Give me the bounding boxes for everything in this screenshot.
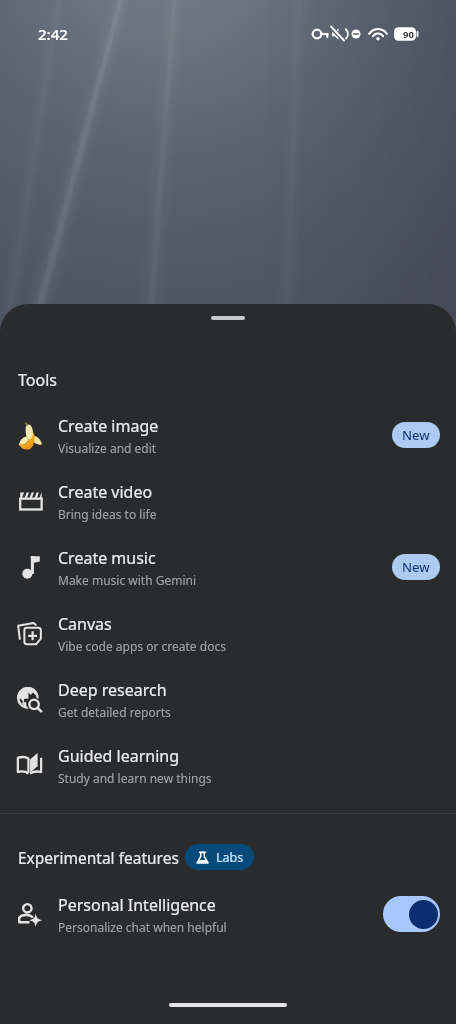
staticText: Make music with Gemini [58, 572, 197, 588]
button[interactable]: Toggle Personal Intelligence [383, 896, 440, 932]
staticText: New [402, 558, 430, 576]
button[interactable]: Labs [185, 844, 254, 870]
staticText: Bring ideas to life [58, 506, 157, 522]
staticText: Guided learning [58, 745, 180, 767]
staticText: Study and learn new things [58, 770, 212, 786]
button[interactable]: Create video [0, 468, 456, 534]
staticText: Create music [58, 547, 156, 569]
staticText: 2:42 [38, 24, 68, 44]
button[interactable]: New [392, 422, 440, 448]
button[interactable]: New [392, 554, 440, 580]
staticText: Canvas [58, 613, 112, 635]
staticText: Create video [58, 481, 153, 503]
button[interactable]: Create music [0, 534, 456, 600]
button[interactable]: Create image [0, 402, 456, 468]
staticText: Personalize chat when helpful [58, 919, 227, 935]
staticText: Tools [18, 369, 57, 391]
staticText: Experimental features [18, 847, 179, 868]
staticText: Get detailed reports [58, 704, 171, 720]
staticText: Deep research [58, 679, 167, 701]
staticText: Vibe code apps or create docs [58, 638, 226, 654]
staticText: New [402, 426, 430, 444]
button[interactable]: Canvas [0, 600, 456, 666]
staticText: Visualize and edit [58, 440, 157, 456]
button[interactable]: Deep research [0, 666, 456, 732]
button[interactable]: Personal Intelligence [0, 881, 456, 947]
staticText: 90 [403, 28, 414, 41]
staticText: Personal Intelligence [58, 894, 216, 916]
staticText: Labs [216, 849, 244, 866]
button[interactable]: Guided learning [0, 732, 456, 798]
staticText: Create image [58, 415, 159, 437]
